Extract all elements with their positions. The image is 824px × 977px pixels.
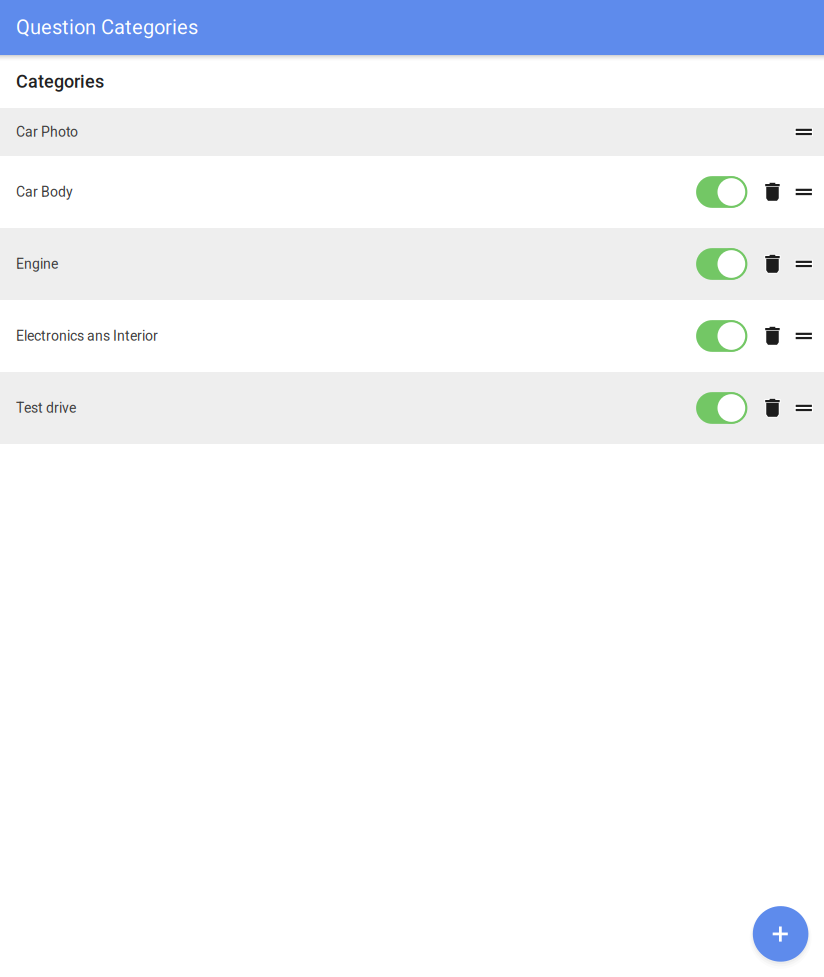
staticText: Engine — [16, 256, 58, 272]
button[interactable]: Car Body — [0, 156, 824, 228]
staticText: Car Photo — [16, 124, 78, 140]
button[interactable]: Reorder Car Photo — [795, 128, 813, 136]
button[interactable]: Engine — [0, 228, 824, 300]
button[interactable]: Reorder Electronics ans Interior — [795, 332, 813, 340]
button[interactable]: Delete Engine — [765, 254, 780, 274]
button[interactable]: Car Photo — [0, 108, 824, 156]
button[interactable]: Add category — [750, 903, 812, 965]
button[interactable]: Enable Test drive — [696, 392, 747, 424]
button[interactable]: Enable Electronics ans Interior — [696, 320, 747, 352]
button[interactable]: Electronics ans Interior — [0, 300, 824, 372]
staticText: Categories — [16, 71, 104, 92]
staticText: Electronics ans Interior — [16, 328, 158, 344]
button[interactable]: Enable Engine — [696, 248, 747, 280]
button[interactable]: Reorder Test drive — [795, 404, 813, 412]
button[interactable]: Reorder Engine — [795, 260, 813, 268]
button[interactable]: Delete Test drive — [765, 398, 780, 418]
button[interactable]: Reorder Car Body — [795, 188, 813, 196]
staticText: Car Body — [16, 184, 73, 200]
button[interactable]: Enable Car Body — [696, 176, 747, 208]
staticText: Question Categories — [16, 16, 198, 39]
button[interactable]: Test drive — [0, 372, 824, 444]
button[interactable]: Delete Electronics ans Interior — [765, 326, 780, 346]
button[interactable]: Delete Car Body — [765, 182, 780, 202]
staticText: Test drive — [16, 400, 76, 416]
